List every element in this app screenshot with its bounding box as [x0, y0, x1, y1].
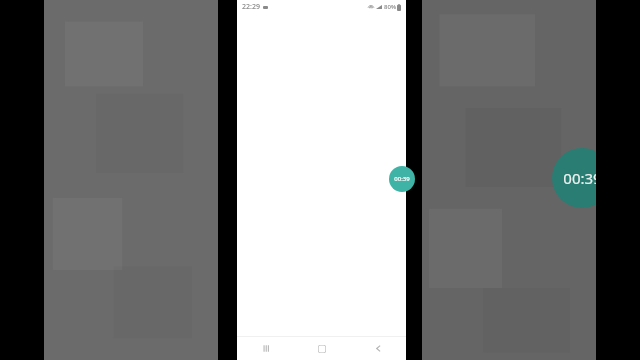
button[interactable]: Back — [350, 337, 406, 360]
staticText: 22:29 — [242, 2, 260, 12]
button[interactable]: Recent apps — [237, 337, 294, 360]
button[interactable]: Recording timer magnified 00:39 — [552, 148, 612, 208]
staticText: 80% — [384, 3, 396, 11]
button[interactable]: Home — [294, 337, 350, 360]
staticText: 00:39 — [394, 175, 410, 183]
staticText: 00:39 — [563, 168, 602, 188]
button[interactable]: Recording timer 00:39 — [389, 166, 415, 192]
